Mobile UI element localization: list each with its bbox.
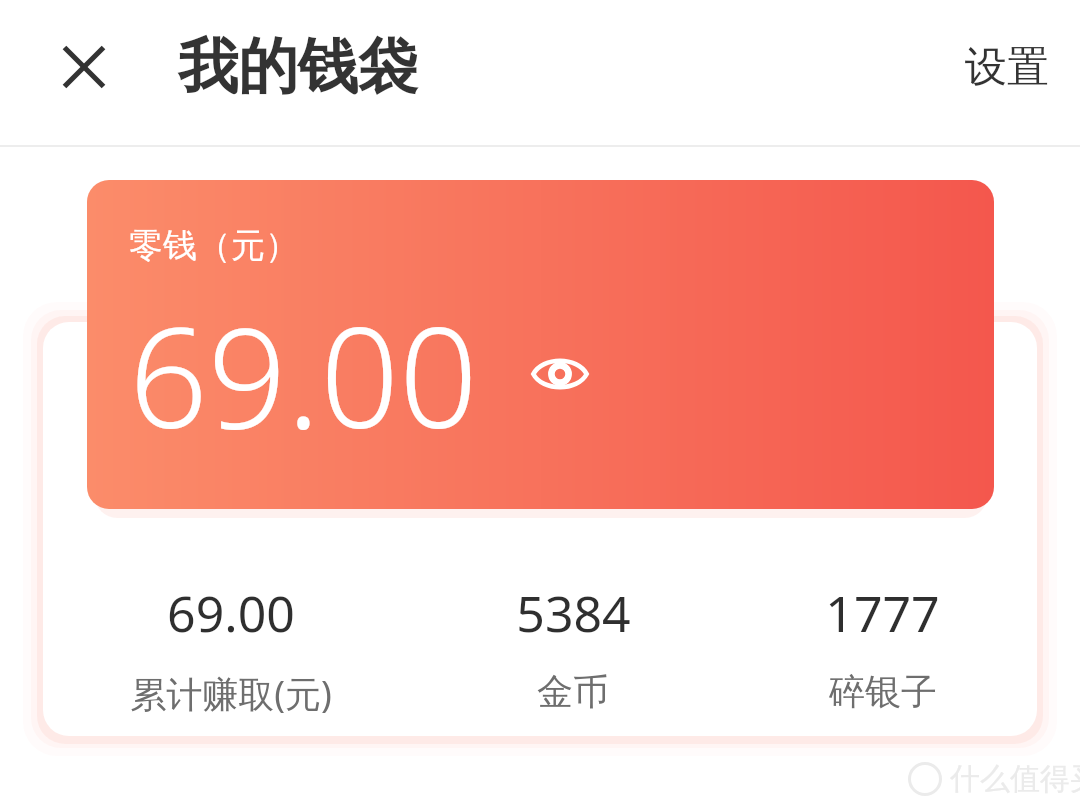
button[interactable]: 5384 (418, 575, 728, 714)
button[interactable]: Close (44, 27, 124, 107)
staticText: 金币 (537, 669, 609, 714)
button[interactable]: 1777 (728, 575, 1037, 714)
button[interactable]: 69.00 (43, 575, 418, 718)
staticText: 69.00 (129, 280, 478, 468)
staticText: 69.00 (167, 579, 295, 647)
button[interactable]: 设置 (944, 24, 1070, 110)
staticText: 累计赚取(元) (130, 669, 332, 718)
staticText: 零钱（元） (129, 224, 299, 267)
button[interactable]: Toggle balance visibility (522, 336, 598, 412)
staticText: 什么值得买 (950, 760, 1080, 798)
staticText: 5384 (516, 579, 631, 647)
staticText: 设置 (965, 41, 1049, 94)
button[interactable]: 零钱（元） (87, 180, 994, 509)
staticText: 我的钱袋 (178, 29, 418, 105)
staticText: 1777 (825, 579, 940, 647)
staticText: 碎银子 (829, 669, 937, 714)
